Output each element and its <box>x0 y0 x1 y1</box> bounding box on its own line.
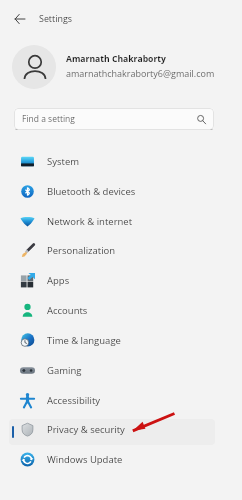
staticText: System <box>47 155 80 168</box>
staticText: Find a setting <box>22 113 75 125</box>
button[interactable]: System <box>9 151 215 177</box>
button[interactable]: Accessibility <box>9 390 215 416</box>
staticText: Windows Update <box>47 453 123 466</box>
button[interactable]: Gaming <box>9 360 215 386</box>
staticText: Time & language <box>47 334 121 347</box>
staticText: Accessibility <box>47 394 101 407</box>
button[interactable]: Accounts <box>9 300 215 326</box>
button[interactable]: Back <box>9 8 30 29</box>
staticText: Privacy & security <box>47 423 125 436</box>
staticText: Amarnath Chakraborty <box>66 53 166 65</box>
staticText: amarnathchakraborty6@gmail.com <box>66 67 215 79</box>
button[interactable]: Apps <box>9 270 215 296</box>
button[interactable]: Network & internet <box>9 211 215 237</box>
button[interactable]: Amarnath Chakraborty <box>0 42 242 92</box>
staticText: Gaming <box>47 364 82 377</box>
button[interactable]: Personalization <box>9 240 215 266</box>
staticText: Personalization <box>47 244 116 257</box>
staticText: Apps <box>47 274 70 287</box>
staticText: Network & internet <box>47 215 133 228</box>
staticText: Bluetooth & devices <box>47 185 136 198</box>
staticText: Settings <box>39 12 72 24</box>
button[interactable]: Windows Update <box>9 449 215 475</box>
staticText: Accounts <box>47 304 88 317</box>
button[interactable]: Time & language <box>9 330 215 356</box>
button[interactable]: Find a setting <box>14 108 214 130</box>
button[interactable]: Privacy & security <box>9 419 215 445</box>
button[interactable]: Bluetooth & devices <box>9 181 215 207</box>
